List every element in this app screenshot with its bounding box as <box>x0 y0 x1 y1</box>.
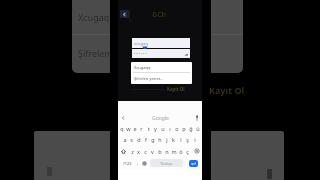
staticText: n <box>165 148 169 155</box>
staticText: u <box>161 125 165 132</box>
button[interactable]: i <box>191 134 198 144</box>
button[interactable]: s <box>128 134 135 144</box>
staticText: GCh <box>152 10 167 20</box>
button[interactable]: v <box>149 146 156 156</box>
button[interactable]: ü <box>194 123 201 133</box>
staticText: Kayıt Ol <box>209 84 245 96</box>
button[interactable]: Türkçe <box>150 159 183 167</box>
button[interactable]: ç <box>184 146 191 156</box>
button[interactable]: f <box>142 134 149 144</box>
staticText: ğ <box>189 125 193 132</box>
button[interactable]: o <box>173 123 180 133</box>
staticText: v <box>151 148 154 155</box>
button[interactable]: Back <box>120 10 129 18</box>
staticText: g <box>151 136 155 143</box>
staticText: b <box>158 148 162 155</box>
staticText: ç <box>186 148 189 155</box>
button[interactable]: k <box>170 134 177 144</box>
button[interactable]: d <box>135 134 142 144</box>
button[interactable]: b <box>156 146 163 156</box>
staticText: w <box>126 125 131 132</box>
staticText: xcugaq <box>134 41 148 46</box>
button[interactable]: ğ <box>187 123 194 133</box>
button[interactable]: xcugaq <box>132 38 190 48</box>
staticText: a <box>123 136 127 143</box>
button[interactable]: ö <box>177 146 184 156</box>
staticText: Kayıt Ol <box>167 86 185 92</box>
staticText: , <box>137 160 139 167</box>
staticText: Şifreleri yönet... <box>134 76 164 81</box>
button[interactable]: Show password <box>183 51 188 56</box>
button[interactable]: Expand suggestions <box>119 114 127 122</box>
button[interactable]: z <box>129 146 135 156</box>
button[interactable]: Kayıt Ol <box>209 84 245 96</box>
staticText: e <box>133 125 137 132</box>
button[interactable]: l <box>177 134 184 144</box>
staticText: c <box>144 148 147 155</box>
staticText: Türkçe <box>160 161 173 166</box>
button[interactable]: , <box>134 158 142 168</box>
staticText: ı <box>169 125 171 132</box>
staticText: Google <box>152 115 169 122</box>
button[interactable]: Kayıt Ol <box>131 85 191 92</box>
staticText: ş <box>186 136 189 143</box>
button[interactable]: r <box>138 123 145 133</box>
button[interactable]: p <box>180 123 187 133</box>
staticText: l <box>180 136 182 143</box>
button[interactable]: ?123 <box>121 158 133 168</box>
button[interactable]: g <box>149 134 156 144</box>
staticText: Şifreleme <box>78 47 118 59</box>
staticText: s <box>130 136 133 143</box>
button[interactable]: y <box>152 123 159 133</box>
button[interactable]: e <box>131 123 138 133</box>
button[interactable]: t <box>145 123 152 133</box>
staticText: Xcugaqq <box>134 65 151 70</box>
staticText: d <box>137 136 141 143</box>
button[interactable]: w <box>125 123 131 133</box>
button[interactable]: a <box>122 134 128 144</box>
staticText: t <box>148 125 150 132</box>
button[interactable]: Xcugaqq <box>131 62 192 72</box>
staticText: f <box>145 136 147 143</box>
staticText: m <box>171 148 177 155</box>
staticText: p <box>182 125 186 132</box>
button[interactable]: n <box>163 146 170 156</box>
staticText: x <box>137 148 140 155</box>
button[interactable]: Şifreleme <box>78 35 243 71</box>
button[interactable]: Voice input <box>193 114 201 122</box>
button[interactable]: q <box>119 123 125 133</box>
staticText: y <box>154 125 157 132</box>
staticText: i <box>194 136 196 143</box>
staticText: h <box>158 136 162 143</box>
button[interactable]: Şifreleri yönet... <box>131 73 192 84</box>
button[interactable]: x <box>135 146 142 156</box>
staticText: z <box>131 148 134 155</box>
button[interactable]: ş <box>184 134 191 144</box>
button[interactable]: Enter <box>189 160 198 167</box>
button[interactable]: h <box>156 134 163 144</box>
button[interactable]: Backspace <box>192 146 201 156</box>
staticText: • • • • • • <box>134 51 147 56</box>
button[interactable]: Emoji <box>140 158 148 168</box>
button[interactable]: u <box>159 123 166 133</box>
button[interactable]: c <box>142 146 149 156</box>
button[interactable]: Shift <box>119 146 128 156</box>
button[interactable]: Xcugaqqq <box>78 0 243 34</box>
button[interactable]: m <box>170 146 177 156</box>
staticText: ö <box>179 148 183 155</box>
button[interactable]: j <box>163 134 170 144</box>
staticText: q <box>120 125 124 132</box>
staticText: o <box>175 125 179 132</box>
staticText: j <box>166 136 168 143</box>
staticText: k <box>172 136 175 143</box>
button[interactable]: ı <box>166 123 173 133</box>
staticText: ü <box>196 125 200 132</box>
staticText: Xcugaqqq <box>78 11 121 23</box>
staticText: r <box>140 125 143 132</box>
staticText: ?123 <box>123 161 132 166</box>
button[interactable]: • • • • • • <box>132 49 190 58</box>
